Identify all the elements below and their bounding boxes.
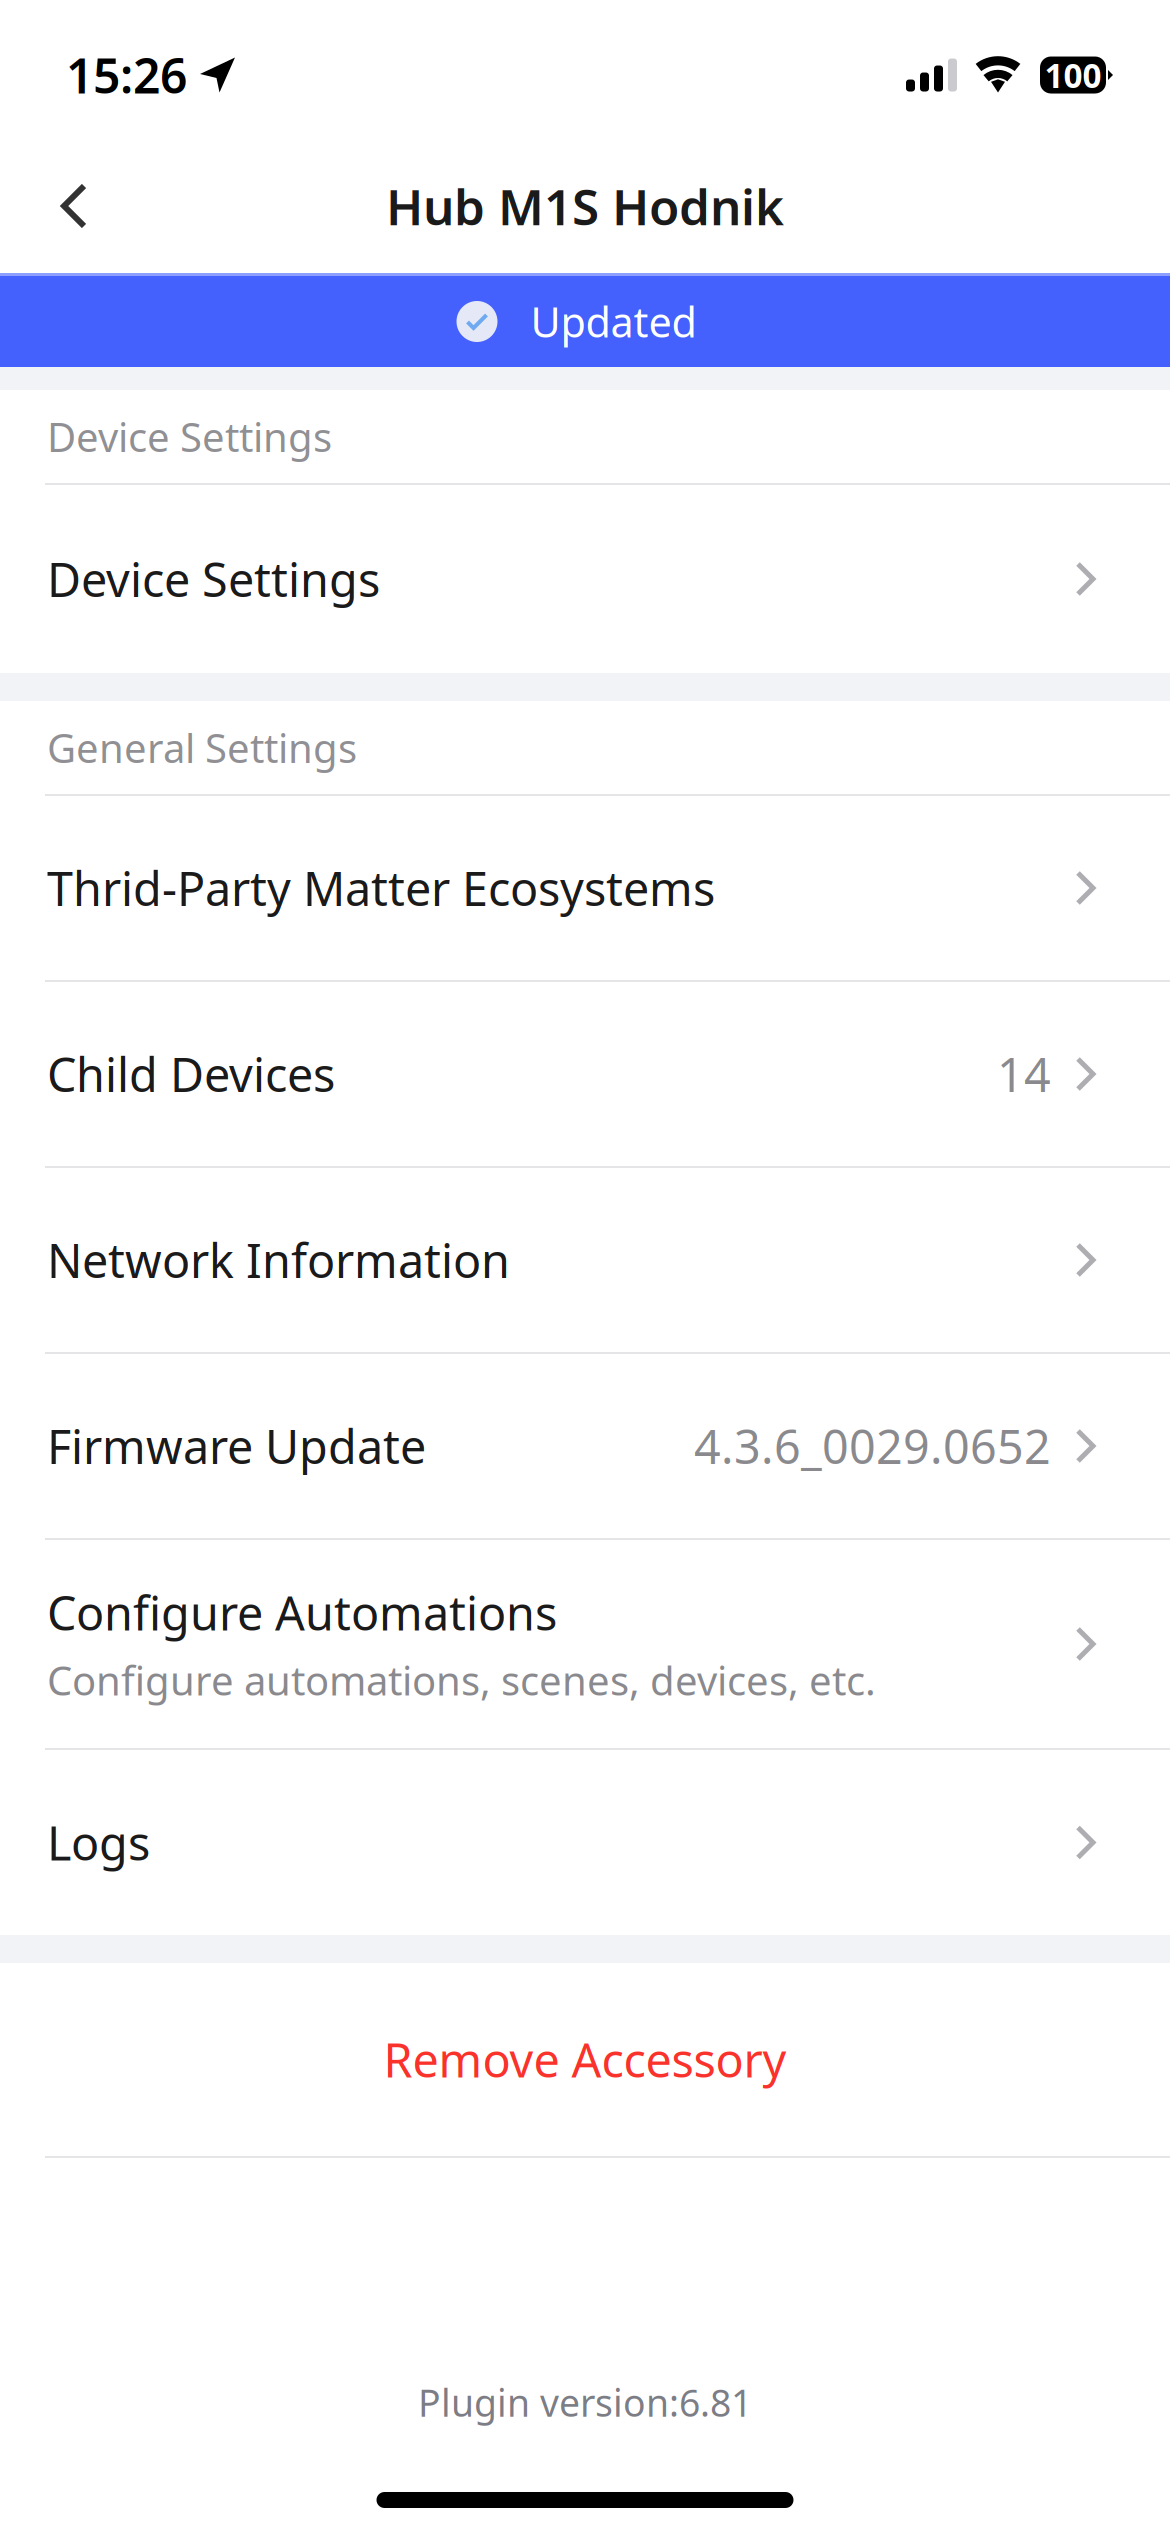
staticText: Logs [47, 1811, 150, 1873]
button[interactable]: Remove Accessory [0, 1963, 1170, 2158]
button[interactable]: Configure Automations [0, 1540, 1170, 1750]
staticText: General Settings [47, 721, 357, 774]
staticText: Hub M1S Hodnik [386, 173, 784, 239]
staticText: Child Devices [47, 1043, 335, 1105]
staticText: Plugin version:6.81 [418, 2377, 752, 2427]
staticText: Device Settings [47, 548, 380, 610]
staticText: Updated [530, 294, 696, 349]
staticText: Configure automations, scenes, devices, … [47, 1653, 876, 1706]
staticText: 100 [1044, 53, 1101, 97]
staticText: Remove Accessory [383, 2028, 786, 2090]
staticText: Device Settings [47, 410, 332, 463]
button[interactable]: Network Information [0, 1168, 1170, 1354]
button[interactable]: Firmware Update [0, 1354, 1170, 1540]
button[interactable]: Child Devices [0, 982, 1170, 1168]
staticText: Thrid-Party Matter Ecosystems [47, 857, 715, 919]
staticText: Firmware Update [47, 1415, 426, 1477]
button[interactable]: Thrid-Party Matter Ecosystems [0, 796, 1170, 982]
button[interactable]: Back [0, 150, 120, 262]
staticText: 15:26 [66, 43, 187, 107]
staticText: Network Information [47, 1229, 510, 1291]
staticText: Configure Automations [47, 1581, 557, 1643]
staticText: 14 [997, 1043, 1051, 1105]
button[interactable]: Logs [0, 1750, 1170, 1935]
button[interactable]: Device Settings [0, 485, 1170, 673]
staticText: 4.3.6_0029.0652 [694, 1415, 1051, 1477]
